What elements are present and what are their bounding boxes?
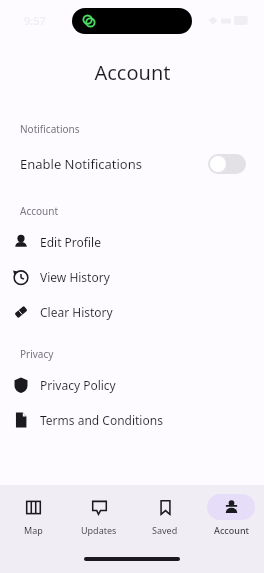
staticText: Privacy Policy [40, 377, 116, 393]
staticText: Edit Profile [40, 234, 101, 250]
button[interactable]: Saved [132, 494, 198, 536]
staticText: Account [214, 524, 249, 536]
staticText: Enable Notifications [20, 155, 142, 173]
button[interactable]: View History [0, 259, 264, 294]
staticText: View History [40, 269, 110, 285]
staticText: Clear History [40, 304, 113, 320]
button[interactable]: Updates [66, 494, 132, 536]
staticText: Updates [81, 524, 117, 536]
staticText: 9:57 [24, 13, 46, 28]
staticText: Saved [152, 524, 178, 536]
staticText: Account [20, 204, 59, 218]
button[interactable]: Edit Profile [0, 224, 264, 259]
button[interactable]: Clear History [0, 294, 264, 329]
button[interactable]: Account [198, 494, 264, 536]
staticText: Privacy [20, 347, 54, 361]
staticText: Map [24, 524, 43, 536]
button[interactable]: Privacy Policy [0, 367, 264, 402]
button[interactable]: Enable Notifications [0, 142, 264, 186]
staticText: Notifications [20, 122, 80, 136]
button[interactable]: Terms and Conditions [0, 402, 264, 437]
staticText: Account [94, 59, 171, 86]
button[interactable]: Map [0, 494, 66, 536]
staticText: Terms and Conditions [40, 412, 163, 428]
